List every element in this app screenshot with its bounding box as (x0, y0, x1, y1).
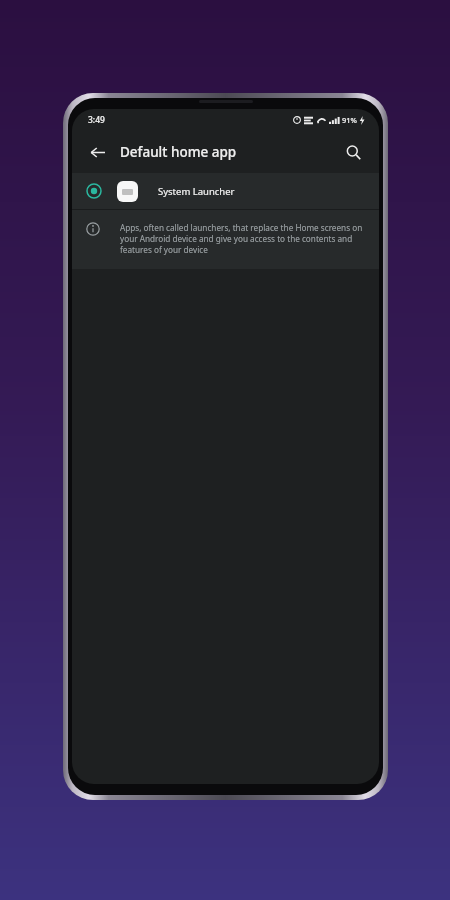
staticText: 91% (342, 115, 357, 125)
button[interactable]: Search (337, 136, 369, 168)
staticText: Apps, often called launchers, that repla… (120, 222, 363, 255)
button[interactable]: System Launcher (72, 173, 379, 209)
button[interactable]: Back (80, 135, 114, 169)
staticText: Default home app (120, 143, 237, 161)
staticText: System Launcher (158, 185, 235, 198)
staticText: 3:49 (88, 114, 105, 126)
